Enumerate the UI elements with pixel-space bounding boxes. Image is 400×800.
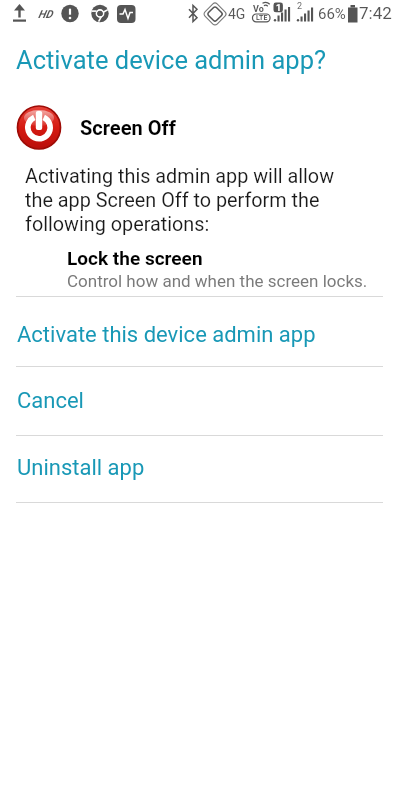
staticText: Control how and when the screen locks. <box>67 271 368 291</box>
staticText: 66% <box>318 5 346 23</box>
staticText: 2 <box>297 1 303 12</box>
staticText: Lock the screen <box>67 247 203 269</box>
staticText: 1 <box>276 3 282 14</box>
staticText: 7:42 <box>359 3 392 23</box>
staticText: HD <box>38 8 53 21</box>
staticText: 4G <box>228 6 246 22</box>
staticText: Activate device admin app? <box>16 45 327 75</box>
staticText: Activating this admin app will allow the… <box>25 165 335 236</box>
button[interactable]: Cancel <box>0 377 400 431</box>
staticText: Screen Off <box>80 116 176 139</box>
staticText: Uninstall app <box>17 455 145 481</box>
staticText: Vo <box>253 4 264 15</box>
button[interactable]: Activate this device admin app <box>0 311 400 365</box>
staticText: Cancel <box>17 388 84 414</box>
staticText: Activate this device admin app <box>17 322 316 348</box>
button[interactable]: Uninstall app <box>0 444 400 498</box>
staticText: LTE <box>256 14 268 22</box>
